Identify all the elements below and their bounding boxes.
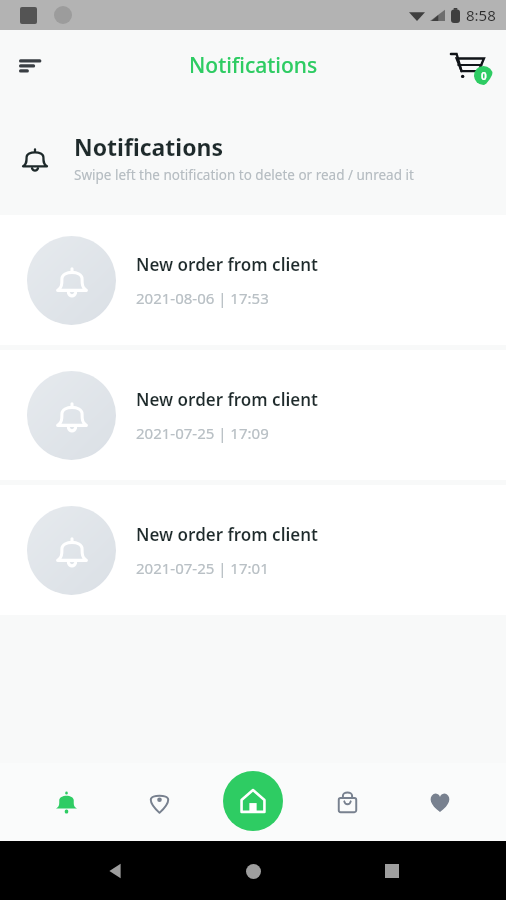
staticText: New order from client bbox=[136, 253, 318, 276]
button[interactable]: Favourites bbox=[412, 774, 468, 830]
button[interactable]: Orders bbox=[319, 774, 375, 830]
button[interactable]: Home bbox=[229, 847, 277, 895]
button[interactable]: Back bbox=[91, 847, 139, 895]
button[interactable]: Home bbox=[223, 771, 283, 831]
staticText: 2021-07-25 | 17:01 bbox=[136, 558, 269, 578]
button[interactable]: Menu bbox=[8, 41, 56, 89]
button[interactable]: Notifications bbox=[38, 774, 94, 830]
staticText: 8:58 bbox=[466, 5, 496, 25]
button[interactable]: Recents bbox=[368, 847, 416, 895]
staticText: New order from client bbox=[136, 523, 318, 546]
button[interactable]: New order from client bbox=[0, 215, 506, 345]
staticText: Swipe left the notification to delete or… bbox=[74, 166, 414, 184]
button[interactable]: New order from client bbox=[0, 350, 506, 480]
staticText: 2021-07-25 | 17:09 bbox=[136, 423, 269, 443]
button[interactable]: New order from client bbox=[0, 485, 506, 615]
staticText: 0 bbox=[481, 69, 487, 83]
button[interactable]: Cart bbox=[442, 39, 494, 91]
staticText: New order from client bbox=[136, 388, 318, 411]
staticText: Notifications bbox=[189, 51, 318, 80]
staticText: 2021-08-06 | 17:53 bbox=[136, 288, 269, 308]
button[interactable]: Location bbox=[131, 774, 187, 830]
staticText: Notifications bbox=[74, 131, 224, 162]
